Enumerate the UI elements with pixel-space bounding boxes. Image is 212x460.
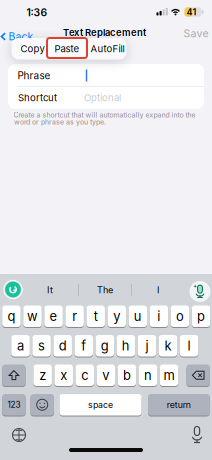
staticText: b bbox=[123, 367, 131, 383]
staticText: t bbox=[94, 308, 98, 324]
button[interactable]: Dictation bbox=[191, 425, 203, 443]
button[interactable]: q bbox=[2, 305, 21, 327]
button[interactable]: f bbox=[74, 334, 93, 357]
staticText: m bbox=[163, 367, 174, 383]
button[interactable]: Next keyboard bbox=[12, 428, 26, 442]
staticText: The bbox=[97, 284, 113, 295]
button[interactable]: It bbox=[25, 277, 75, 303]
button[interactable]: m bbox=[160, 364, 178, 386]
staticText: q bbox=[7, 308, 15, 324]
staticText: h bbox=[122, 338, 130, 353]
staticText: k bbox=[164, 338, 171, 353]
button[interactable]: space bbox=[59, 393, 141, 416]
button[interactable]: Shift bbox=[2, 364, 26, 386]
staticText: word or phrase as you type. bbox=[14, 118, 106, 126]
button[interactable]: n bbox=[139, 364, 157, 386]
staticText: Phrase bbox=[17, 70, 50, 82]
staticText: Create a shortcut that will automaticall… bbox=[13, 111, 195, 119]
staticText: I bbox=[157, 284, 159, 295]
button[interactable]: b bbox=[118, 364, 136, 386]
staticText: u bbox=[134, 308, 142, 324]
staticText: d bbox=[59, 338, 67, 353]
staticText: a bbox=[17, 338, 24, 353]
staticText: return bbox=[167, 399, 191, 410]
staticText: y bbox=[113, 308, 120, 324]
staticText: s bbox=[38, 338, 45, 353]
button[interactable]: return bbox=[148, 393, 210, 416]
staticText: r bbox=[72, 308, 77, 324]
button[interactable]: 123 bbox=[2, 393, 26, 416]
staticText: space bbox=[88, 399, 113, 410]
button[interactable]: s bbox=[32, 334, 51, 357]
staticText: n bbox=[144, 367, 152, 383]
button[interactable]: x bbox=[54, 364, 73, 386]
staticText: It bbox=[47, 284, 53, 295]
staticText: i bbox=[157, 308, 160, 324]
button[interactable]: h bbox=[117, 334, 135, 357]
button[interactable]: r bbox=[65, 305, 84, 327]
button[interactable]: Save bbox=[183, 27, 208, 40]
button[interactable]: i bbox=[150, 305, 168, 327]
button[interactable]: Phrase bbox=[8, 64, 204, 87]
staticText: 1:36 bbox=[26, 6, 47, 19]
button[interactable]: j bbox=[138, 334, 156, 357]
button[interactable]: p bbox=[192, 305, 210, 327]
button[interactable]: e bbox=[44, 305, 63, 327]
staticText: 123 bbox=[7, 400, 20, 410]
button[interactable]: o bbox=[171, 305, 189, 327]
button[interactable]: c bbox=[75, 364, 94, 386]
staticText: Paste bbox=[54, 43, 79, 54]
button[interactable]: Back bbox=[0, 30, 33, 43]
button[interactable]: y bbox=[107, 305, 126, 327]
staticText: e bbox=[50, 308, 58, 324]
button[interactable]: z bbox=[33, 364, 52, 386]
button[interactable]: Copy bbox=[14, 38, 51, 59]
staticText: x bbox=[60, 367, 67, 383]
staticText: l bbox=[187, 338, 190, 353]
staticText: Copy bbox=[20, 43, 44, 54]
staticText: z bbox=[39, 367, 46, 383]
button[interactable]: Grammarly bbox=[4, 280, 22, 299]
button[interactable]: Paste bbox=[50, 38, 84, 59]
staticText: j bbox=[145, 338, 148, 353]
button[interactable]: w bbox=[23, 305, 42, 327]
button[interactable]: Emoji bbox=[30, 393, 54, 416]
staticText: g bbox=[101, 338, 109, 353]
button[interactable]: a bbox=[11, 334, 30, 357]
button[interactable]: Voice typing bbox=[189, 281, 210, 302]
button[interactable]: I bbox=[133, 277, 183, 303]
staticText: Back bbox=[8, 30, 33, 43]
staticText: AutoFill bbox=[90, 43, 124, 54]
staticText: Shortcut bbox=[18, 92, 57, 103]
button[interactable]: g bbox=[95, 334, 114, 357]
staticText: w bbox=[27, 308, 38, 324]
button[interactable]: d bbox=[53, 334, 72, 357]
staticText: Save bbox=[183, 27, 208, 40]
staticText: Optional bbox=[84, 92, 121, 103]
staticText: f bbox=[81, 338, 86, 353]
staticText: 41 bbox=[186, 6, 196, 17]
staticText: c bbox=[81, 367, 88, 383]
button[interactable]: The bbox=[80, 277, 130, 303]
button[interactable]: k bbox=[159, 334, 177, 357]
button[interactable]: t bbox=[86, 305, 105, 327]
button[interactable]: Delete bbox=[186, 364, 210, 386]
staticText: o bbox=[176, 308, 184, 324]
button[interactable]: AutoFill bbox=[86, 38, 128, 59]
button[interactable]: u bbox=[129, 305, 147, 327]
staticText: p bbox=[197, 308, 205, 324]
staticText: v bbox=[102, 367, 109, 383]
button[interactable]: v bbox=[97, 364, 115, 386]
button[interactable]: Shortcut bbox=[8, 86, 204, 109]
staticText: Text Replacement bbox=[63, 27, 146, 38]
button[interactable]: l bbox=[180, 334, 198, 357]
